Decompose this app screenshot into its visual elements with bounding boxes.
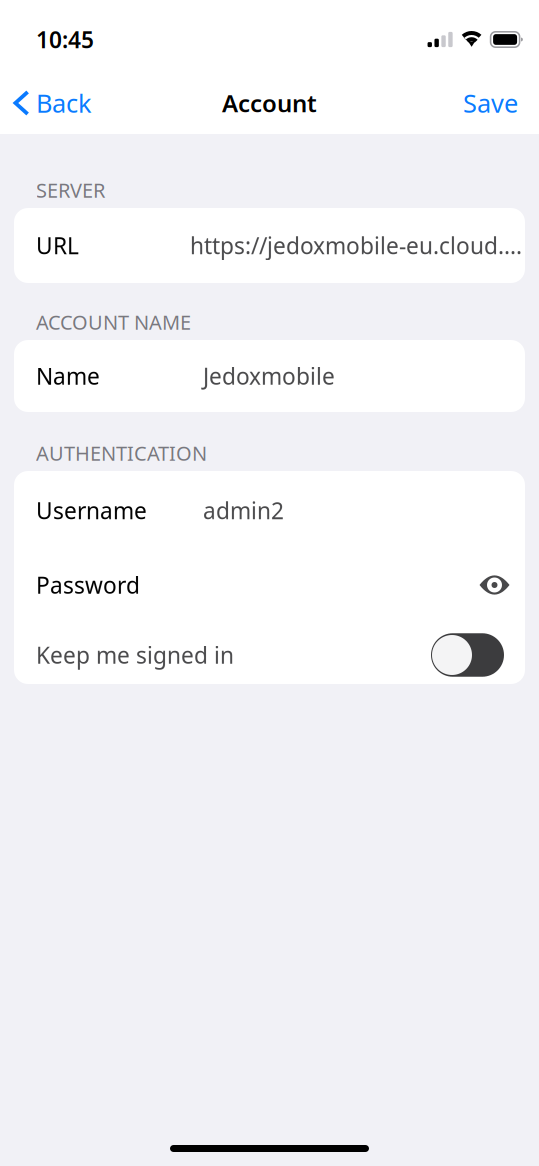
staticText: admin2: [203, 495, 284, 525]
staticText: AUTHENTICATION: [36, 440, 207, 466]
staticText: Jedoxmobile: [203, 361, 335, 391]
staticText: 10:45: [36, 24, 94, 54]
staticText: Username: [36, 495, 147, 525]
staticText: Password: [36, 570, 140, 600]
button[interactable]: Save: [446, 75, 539, 131]
button[interactable]: Show password: [473, 561, 516, 609]
staticText: Account: [222, 87, 317, 119]
staticText: Keep me signed in: [36, 640, 234, 670]
staticText: Back: [36, 86, 92, 120]
staticText: https://jedoxmobile-eu.cloud....: [190, 230, 522, 260]
staticText: SERVER: [36, 177, 105, 203]
staticText: URL: [36, 230, 79, 260]
staticText: ACCOUNT NAME: [36, 309, 191, 335]
staticText: Name: [36, 361, 100, 391]
button[interactable]: Back: [0, 75, 104, 131]
button[interactable]: Keep me signed in: [431, 633, 504, 677]
staticText: Save: [463, 86, 518, 120]
